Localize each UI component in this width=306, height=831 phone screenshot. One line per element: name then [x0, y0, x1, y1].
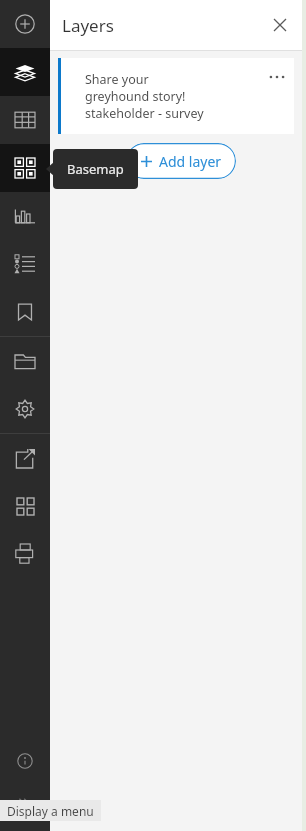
- button[interactable]: Layers: [0, 48, 50, 96]
- button[interactable]: Add layer: [126, 143, 236, 179]
- button[interactable]: Close: [266, 11, 294, 39]
- button[interactable]: Apps: [0, 482, 50, 530]
- staticText: Basemap: [67, 160, 124, 178]
- staticText: Add layer: [159, 152, 222, 171]
- button[interactable]: Basemap: [0, 144, 50, 192]
- button[interactable]: Settings: [0, 385, 50, 433]
- button[interactable]: Share your greyhound story! stakeholder …: [58, 58, 294, 134]
- button[interactable]: About: [12, 748, 38, 774]
- staticText: Display a menu: [7, 803, 94, 819]
- button[interactable]: Legend: [0, 240, 50, 288]
- button[interactable]: Add: [0, 0, 50, 48]
- button[interactable]: Tables: [0, 96, 50, 144]
- button[interactable]: Bookmarks: [0, 288, 50, 336]
- button[interactable]: Charts: [0, 192, 50, 240]
- button[interactable]: Print: [0, 530, 50, 578]
- button[interactable]: Share: [0, 434, 50, 482]
- button[interactable]: More options: [264, 64, 290, 90]
- button[interactable]: Expand: [12, 790, 38, 816]
- staticText: Share your greyhound story! stakeholder …: [85, 71, 204, 122]
- staticText: Layers: [62, 14, 114, 37]
- button[interactable]: Folder: [0, 337, 50, 385]
